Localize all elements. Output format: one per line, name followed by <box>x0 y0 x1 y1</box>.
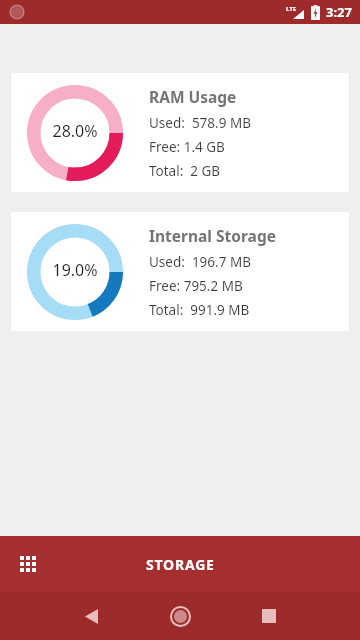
staticText: Total: 991.9 MB <box>149 301 250 319</box>
staticText: Free: 1.4 GB <box>149 138 225 156</box>
staticText: Total: 2 GB <box>149 162 221 180</box>
button[interactable]: Recents <box>249 596 289 636</box>
staticText: Used: 196.7 MB <box>149 253 251 271</box>
button[interactable]: Apps <box>8 544 48 584</box>
staticText: 3:27 <box>326 3 352 21</box>
button[interactable]: Home <box>160 596 200 636</box>
staticText: Free: 795.2 MB <box>149 277 243 295</box>
staticText: RAM Usage <box>149 86 237 107</box>
staticText: 28.0% <box>52 120 98 142</box>
button[interactable]: Back <box>71 596 111 636</box>
button[interactable]: 28.0% <box>11 73 349 192</box>
staticText: Internal Storage <box>149 225 276 246</box>
staticText: 19.0% <box>52 259 98 281</box>
staticText: Used: 578.9 MB <box>149 114 251 132</box>
staticText: LTE <box>286 5 297 13</box>
staticText: STORAGE <box>146 555 215 574</box>
button[interactable]: 19.0% <box>11 212 349 331</box>
